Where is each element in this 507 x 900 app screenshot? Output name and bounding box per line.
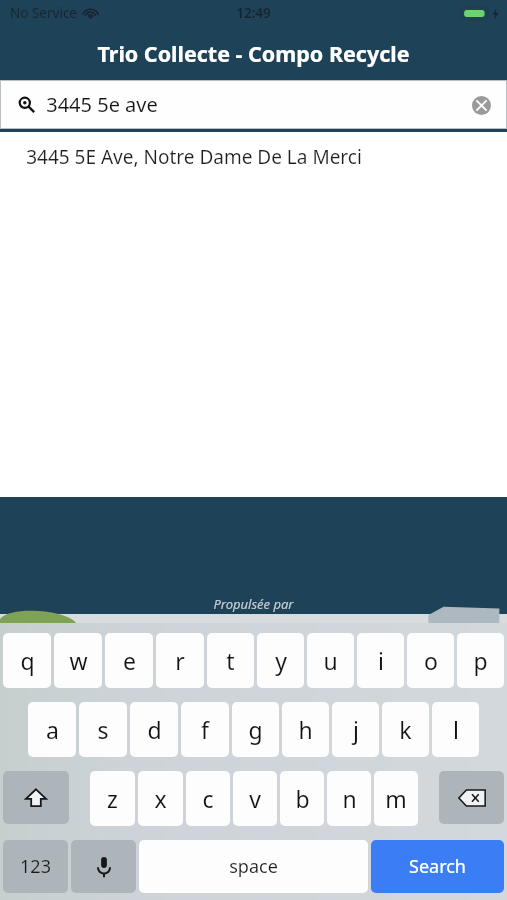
staticText: l: [453, 714, 459, 745]
staticText: x: [154, 783, 167, 814]
button[interactable]: y: [257, 633, 304, 688]
button[interactable]: t: [207, 633, 254, 688]
button[interactable]: n: [327, 771, 371, 826]
button[interactable]: Clear search: [461, 85, 501, 125]
button[interactable]: Dictation: [71, 840, 136, 893]
button[interactable]: w: [54, 633, 102, 688]
staticText: t: [226, 645, 235, 676]
staticText: Trio Collecte - Compo Recycle: [97, 39, 410, 68]
staticText: Propulsée par: [213, 595, 294, 613]
button[interactable]: Backspace: [439, 771, 504, 824]
button[interactable]: f: [181, 702, 229, 757]
staticText: o: [424, 645, 438, 676]
button[interactable]: v: [233, 771, 277, 826]
button[interactable]: 3445 5E Ave, Notre Dame De La Merci: [0, 132, 507, 182]
staticText: z: [107, 783, 118, 814]
staticText: i: [378, 645, 384, 676]
staticText: n: [342, 783, 357, 814]
staticText: v: [249, 783, 261, 814]
button[interactable]: a: [28, 702, 76, 757]
button[interactable]: b: [280, 771, 324, 826]
staticText: c: [202, 783, 214, 814]
staticText: 123: [20, 854, 51, 879]
button[interactable]: c: [186, 771, 230, 826]
staticText: h: [298, 714, 313, 745]
staticText: p: [473, 645, 488, 676]
staticText: a: [46, 714, 59, 745]
button[interactable]: i: [357, 633, 404, 688]
button[interactable]: j: [332, 702, 379, 757]
button[interactable]: space: [139, 840, 368, 893]
staticText: 12:49: [236, 4, 271, 22]
staticText: k: [399, 714, 412, 745]
staticText: g: [248, 714, 263, 745]
button[interactable]: e: [105, 633, 153, 688]
button[interactable]: o: [407, 633, 454, 688]
button[interactable]: m: [374, 771, 418, 826]
staticText: f: [201, 714, 209, 745]
button[interactable]: p: [457, 633, 504, 688]
staticText: q: [20, 645, 35, 676]
button[interactable]: z: [90, 771, 135, 826]
button[interactable]: g: [232, 702, 279, 757]
staticText: e: [123, 645, 136, 676]
staticText: 3445 5E Ave, Notre Dame De La Merci: [26, 144, 362, 170]
button[interactable]: s: [79, 702, 127, 757]
button[interactable]: u: [307, 633, 354, 688]
staticText: w: [69, 645, 88, 676]
staticText: u: [323, 645, 338, 676]
staticText: y: [275, 645, 287, 676]
button[interactable]: l: [432, 702, 479, 757]
staticText: m: [385, 783, 407, 814]
button[interactable]: r: [156, 633, 204, 688]
button[interactable]: 3445 5e ave: [0, 80, 507, 129]
button[interactable]: 123: [3, 840, 68, 893]
button[interactable]: x: [138, 771, 183, 826]
button[interactable]: k: [382, 702, 429, 757]
staticText: space: [229, 854, 278, 879]
button[interactable]: q: [3, 633, 51, 688]
button[interactable]: Shift: [3, 771, 69, 824]
staticText: Search: [409, 854, 466, 879]
staticText: d: [147, 714, 162, 745]
staticText: 3445 5e ave: [46, 91, 158, 118]
staticText: j: [353, 714, 359, 745]
staticText: No Service: [10, 4, 77, 22]
button[interactable]: Search: [371, 840, 504, 893]
button[interactable]: h: [282, 702, 329, 757]
staticText: r: [175, 645, 185, 676]
staticText: s: [97, 714, 109, 745]
staticText: b: [295, 783, 310, 814]
button[interactable]: d: [130, 702, 178, 757]
